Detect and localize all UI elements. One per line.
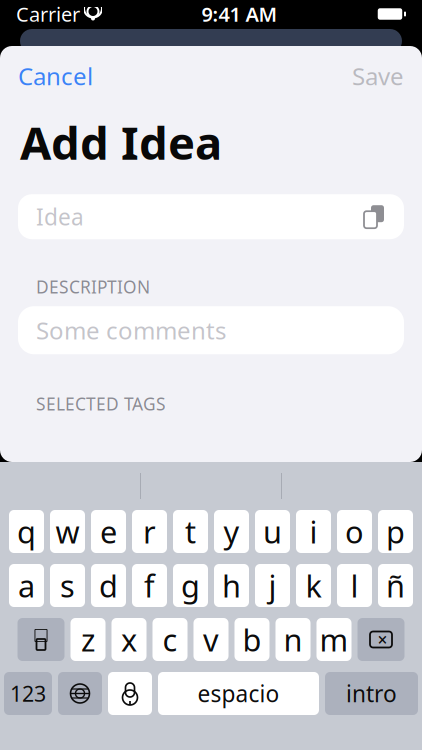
staticText: b [242, 619, 261, 660]
staticText: y [223, 511, 239, 552]
staticText: q [17, 511, 36, 552]
button[interactable]: intro [325, 672, 418, 715]
staticText: x [121, 619, 137, 660]
staticText: h [222, 565, 241, 606]
button[interactable]: l [337, 564, 372, 607]
staticText: j [268, 565, 276, 606]
button[interactable]: z [70, 618, 105, 661]
button[interactable]: t [173, 510, 208, 553]
staticText: intro [346, 678, 397, 708]
button[interactable]: c [152, 618, 187, 661]
staticText: d [99, 565, 118, 606]
button[interactable]: g [173, 564, 208, 607]
button[interactable]: r [132, 510, 167, 553]
button[interactable]: b [234, 618, 269, 661]
button[interactable]: Copy [362, 204, 386, 230]
staticText: espacio [197, 678, 279, 708]
button[interactable]: k [296, 564, 331, 607]
staticText: s [60, 565, 75, 606]
button[interactable]: Save [334, 50, 422, 102]
button[interactable]: ñ [378, 564, 413, 607]
staticText: 123 [10, 679, 46, 708]
button[interactable]: j [255, 564, 290, 607]
button[interactable]: f [132, 564, 167, 607]
staticText: SELECTED TAGS [36, 392, 166, 415]
button[interactable]: a [9, 564, 44, 607]
staticText: Cancel [18, 60, 93, 92]
button[interactable]: m [316, 618, 351, 661]
staticText: × [377, 628, 387, 651]
button[interactable]: e [91, 510, 126, 553]
button[interactable]: p [378, 510, 413, 553]
staticText: Add Idea [20, 112, 222, 172]
button[interactable]: espacio [158, 672, 319, 715]
button[interactable]: Delete [357, 618, 404, 661]
button[interactable]: Dictation [108, 672, 152, 715]
staticText: m [319, 619, 348, 660]
button[interactable]: s [50, 564, 85, 607]
staticText: l [350, 565, 358, 606]
staticText: i [309, 511, 317, 552]
staticText: p [386, 511, 405, 552]
staticText: Carrier [16, 1, 80, 27]
button[interactable]: i [296, 510, 331, 553]
staticText: ñ [386, 565, 405, 606]
staticText: Idea [36, 202, 84, 232]
staticText: t [185, 511, 196, 552]
button[interactable]: w [50, 510, 85, 553]
button[interactable]: q [9, 510, 44, 553]
staticText: o [345, 511, 364, 552]
staticText: a [18, 565, 35, 606]
button[interactable]: o [337, 510, 372, 553]
button[interactable]: Shift [17, 618, 64, 661]
staticText: w [55, 511, 79, 552]
staticText: Save [352, 60, 404, 92]
button[interactable]: u [255, 510, 290, 553]
button[interactable]: Next keyboard [58, 672, 102, 715]
button[interactable]: h [214, 564, 249, 607]
button[interactable]: n [275, 618, 310, 661]
staticText: DESCRIPTION [36, 275, 150, 298]
button[interactable]: 123 [4, 672, 52, 715]
staticText: z [81, 619, 95, 660]
staticText: f [144, 565, 155, 606]
staticText [79, 0, 85, 29]
staticText: Some comments [36, 314, 226, 346]
button[interactable]: v [193, 618, 228, 661]
staticText: r [143, 511, 156, 552]
button[interactable]: d [91, 564, 126, 607]
button[interactable]: x [111, 618, 146, 661]
staticText: 9:41 AM [201, 1, 277, 27]
staticText: c [162, 619, 177, 660]
button[interactable]: y [214, 510, 249, 553]
staticText: n [283, 619, 302, 660]
staticText: g [181, 565, 200, 606]
staticText: u [263, 511, 282, 552]
button[interactable]: Cancel [0, 50, 111, 102]
staticText: e [100, 511, 117, 552]
staticText: k [305, 565, 321, 606]
staticText: v [203, 619, 219, 660]
